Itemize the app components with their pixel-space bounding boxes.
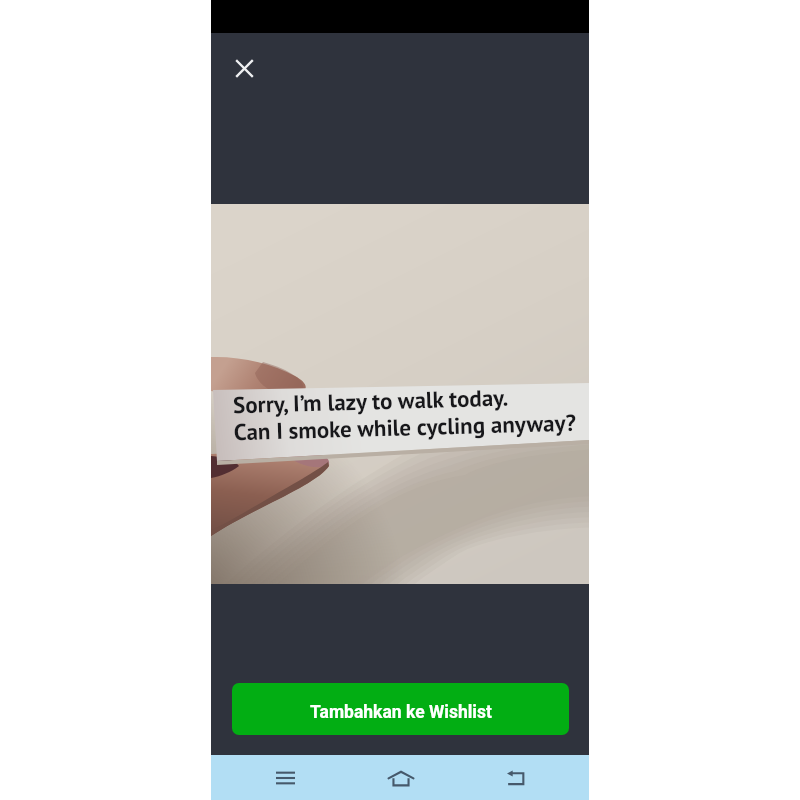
button[interactable]: Home xyxy=(333,755,468,800)
staticText: Can I smoke while cycling anyway? xyxy=(233,408,577,447)
button[interactable]: Tambahkan ke Wishlist xyxy=(232,683,569,735)
staticText: Sorry, I’m lazy to walk today. xyxy=(233,383,509,420)
button[interactable]: Close xyxy=(221,45,267,91)
button[interactable]: Back xyxy=(468,755,564,800)
button[interactable]: Recent apps xyxy=(237,755,333,800)
staticText: Tambahkan ke Wishlist xyxy=(310,702,492,723)
